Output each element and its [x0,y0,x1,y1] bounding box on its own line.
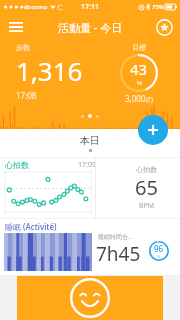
staticText: docomo [24,3,48,11]
staticText: 7h45 [96,241,141,267]
staticText: 睡眠 (Activité) [5,221,57,232]
staticText: 本日 [80,134,100,147]
staticText: % [157,254,161,259]
staticText: 心拍数 [5,160,29,170]
staticText: 活動量 - 今日 [58,20,123,35]
staticText: 17:11 [81,2,99,12]
staticText: 目標 [132,43,146,52]
button[interactable]: Mood [17,276,163,320]
staticText: 75% [152,3,164,11]
staticText: % [137,79,142,87]
staticText: 心拍数 [136,165,157,174]
button[interactable]: Favorite [154,17,174,37]
staticText: 43 [130,59,148,79]
staticText: 歩数 [16,43,30,52]
button[interactable]: 睡眠 (Activité) [0,219,180,275]
staticText: 65 [135,174,158,201]
staticText: 17:09 [78,160,96,170]
staticText: 96 [154,243,164,254]
staticText: 17:08 [16,90,37,101]
button[interactable]: Add [138,115,168,145]
staticText: 3,000の [125,93,154,104]
button[interactable]: Menu [6,17,26,37]
button[interactable]: 心拍数 [0,158,180,218]
staticText: 1,316 [16,53,83,88]
staticText: 睡眠時間合… [98,233,133,241]
staticText: BPM [139,201,155,211]
